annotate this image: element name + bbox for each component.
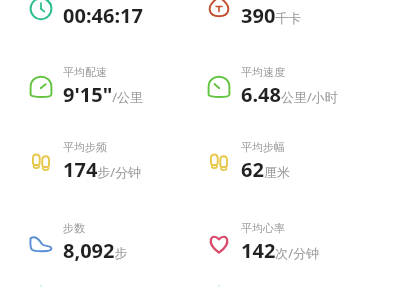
staticText: 9'15"/公里 xyxy=(63,81,144,108)
button[interactable]: 平均步频 xyxy=(26,140,142,183)
other: 平均配速 xyxy=(28,74,54,100)
staticText: 平均步幅 xyxy=(241,140,285,154)
other: 平均步幅 xyxy=(206,149,232,175)
staticText: 平均配速 xyxy=(63,65,107,79)
staticText: 平均速度 xyxy=(241,65,285,79)
button[interactable]: 运动时长 xyxy=(26,0,143,29)
button[interactable]: 运动消耗热量 xyxy=(204,0,307,29)
button[interactable]: 平均步幅 xyxy=(204,140,290,183)
other: 平均速度 xyxy=(206,74,232,100)
staticText: 142次/分钟 xyxy=(241,237,320,264)
other: 平均心率 xyxy=(206,230,232,256)
other: 运动时长 xyxy=(28,0,54,21)
other: 平均步频 xyxy=(28,149,54,175)
staticText: 8,092步 xyxy=(63,237,128,264)
staticText: 平均心率 xyxy=(241,221,285,235)
staticText: 00:46:17 xyxy=(63,2,143,29)
button[interactable]: 平均配速 xyxy=(26,65,144,108)
button[interactable]: 平均心率 xyxy=(204,221,320,264)
staticText: 步数 xyxy=(63,221,85,235)
staticText: 6.48公里/小时 xyxy=(241,81,338,108)
button[interactable]: 步数 xyxy=(26,221,128,264)
other: 步数 xyxy=(28,230,54,256)
staticText: 390千卡 xyxy=(241,2,302,29)
other: 运动消耗热量 xyxy=(206,0,232,21)
staticText: 174步/分钟 xyxy=(63,156,142,183)
staticText: 平均步频 xyxy=(63,140,107,154)
staticText: 62厘米 xyxy=(241,156,290,183)
button[interactable]: 平均速度 xyxy=(204,65,338,108)
